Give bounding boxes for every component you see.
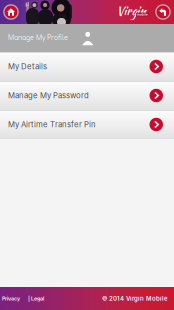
- staticText: Manage My Profile: [8, 35, 68, 41]
- staticText: Virgin: [116, 2, 145, 20]
- staticText: mobile: [137, 13, 148, 16]
- staticText: My Details: [8, 62, 47, 71]
- staticText: Legal: [31, 295, 44, 302]
- button[interactable]: My Airtime Transfer Pin: [0, 110, 174, 139]
- staticText: My Airtime Transfer Pin: [8, 120, 96, 129]
- button[interactable]: Privacy: [2, 287, 24, 310]
- staticText: Privacy: [2, 295, 20, 302]
- button[interactable]: My Details: [0, 52, 174, 81]
- staticText: © 2014 Virgin Mobile: [102, 295, 168, 302]
- button[interactable]: Legal: [31, 287, 47, 310]
- button[interactable]: Home: [0, 0, 22, 24]
- button[interactable]: Manage My Password: [0, 81, 174, 110]
- button[interactable]: Back: [152, 0, 174, 24]
- staticText: Manage My Password: [8, 91, 89, 100]
- staticText: |: [28, 295, 30, 302]
